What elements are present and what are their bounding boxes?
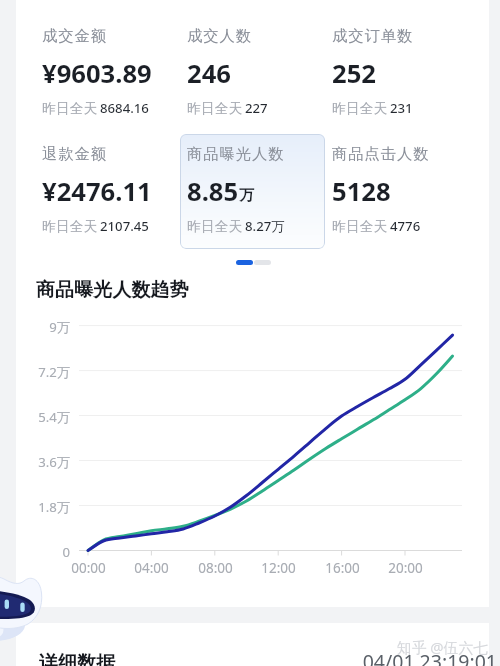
staticText: 246	[187, 56, 231, 91]
staticText: 8.85	[187, 174, 239, 209]
staticText: 00:00	[71, 559, 106, 577]
staticText: 7.2万	[38, 363, 70, 381]
staticText: 昨日全天	[332, 100, 388, 117]
staticText: 16:00	[325, 559, 360, 577]
staticText: 昨日全天	[187, 218, 243, 235]
button[interactable]	[325, 134, 470, 249]
other: Page 1	[236, 260, 253, 265]
staticText: 2107.45	[100, 217, 149, 235]
button[interactable]	[35, 134, 180, 249]
staticText: 退款金额	[42, 144, 107, 163]
staticText: 昨日全天	[187, 100, 243, 117]
staticText: 8684.16	[100, 99, 149, 117]
staticText: 0	[62, 543, 70, 561]
staticText: 成交金额	[42, 26, 107, 45]
staticText: 昨日全天	[42, 218, 98, 235]
staticText: ¥9603.89	[42, 56, 152, 91]
staticText: 04:00	[134, 559, 169, 577]
button[interactable]	[180, 134, 325, 249]
staticText: 商品曝光人数趋势	[36, 278, 189, 302]
staticText: 商品点击人数	[332, 144, 430, 163]
staticText: 9万	[49, 318, 70, 336]
button[interactable]	[35, 16, 180, 131]
other: Page 2	[254, 260, 271, 265]
staticText: 4776	[390, 217, 421, 235]
staticText: 成交订单数	[332, 26, 414, 45]
staticText: 昨日全天	[332, 218, 388, 235]
staticText: 万	[239, 186, 254, 205]
staticText: 20:00	[388, 559, 423, 577]
staticText: 231	[390, 99, 413, 117]
staticText: 227	[245, 99, 268, 117]
staticText: ¥2476.11	[42, 174, 152, 209]
staticText: 5128	[332, 174, 391, 209]
button[interactable]	[180, 16, 325, 131]
staticText: 商品曝光人数	[187, 144, 285, 163]
staticText: 1.8万	[38, 498, 70, 516]
staticText: 成交人数	[187, 26, 252, 45]
staticText: 昨日全天	[42, 100, 98, 117]
staticText: 12:00	[261, 559, 296, 577]
staticText: 08:00	[198, 559, 233, 577]
staticText: 252	[332, 56, 376, 91]
staticText: 详细数据	[39, 651, 116, 666]
staticText: 3.6万	[38, 453, 70, 471]
staticText: 5.4万	[38, 408, 70, 426]
staticText: 04/01 23:19:01	[362, 648, 497, 666]
staticText: 知乎 @伍六七	[396, 637, 488, 657]
staticText: 8.27万	[245, 217, 285, 235]
button[interactable]	[325, 16, 470, 131]
